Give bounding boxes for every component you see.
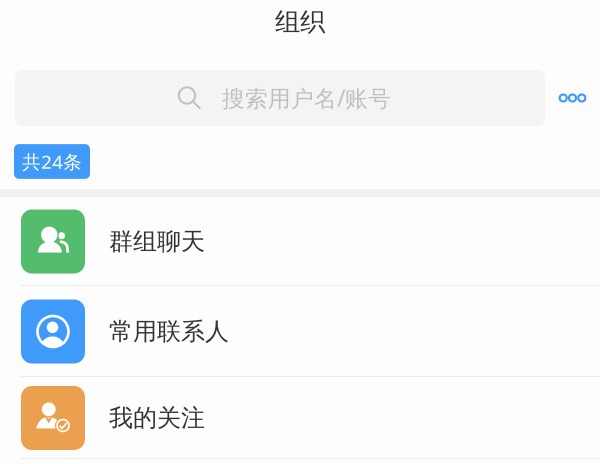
button[interactable]: More options [545,70,600,126]
button[interactable]: 群组聊天 [0,197,600,286]
staticText: 组织 [275,6,325,37]
button[interactable]: 我的关注 [0,377,600,459]
staticText: 我的关注 [109,403,205,433]
staticText: 搜索用户名/账号 [222,83,391,113]
staticText: 共24条 [22,149,82,174]
staticText: 群组聊天 [109,227,205,256]
staticText: 常用联系人 [109,317,229,346]
button[interactable]: 常用联系人 [0,286,600,377]
